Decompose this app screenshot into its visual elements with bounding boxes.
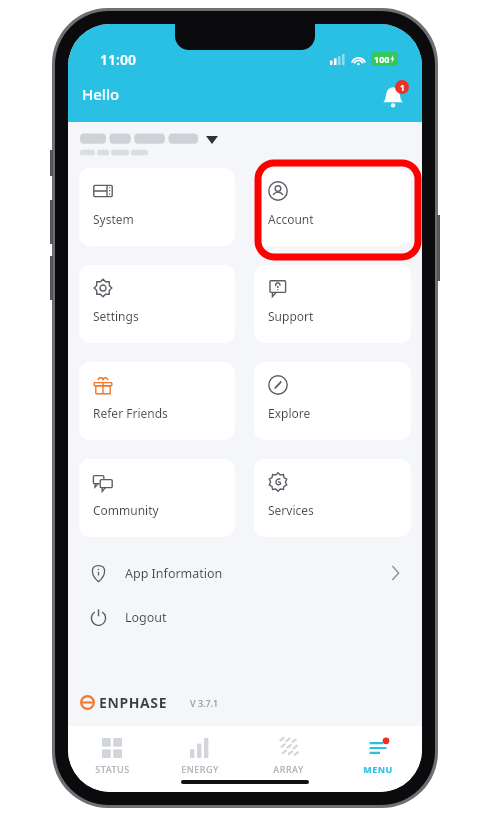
button[interactable]: System — [79, 168, 235, 246]
button[interactable] — [80, 132, 218, 156]
button[interactable]: ENERGY — [156, 736, 244, 777]
button[interactable]: Community — [79, 459, 235, 537]
staticText: 100 — [374, 53, 390, 65]
staticText: Support — [268, 308, 314, 324]
staticText: System — [93, 211, 134, 227]
button[interactable]: Notifications — [376, 78, 410, 112]
button[interactable]: Services — [254, 459, 411, 537]
staticText: 1 — [400, 82, 405, 93]
staticText: Account — [268, 211, 314, 227]
button[interactable]: Refer Friends — [79, 362, 235, 440]
staticText: Hello — [82, 84, 120, 104]
staticText: Settings — [93, 308, 139, 324]
button[interactable]: STATUS — [68, 736, 156, 777]
button[interactable]: Settings — [79, 265, 235, 343]
staticText: Logout — [125, 609, 167, 626]
button[interactable]: App Information — [68, 551, 422, 595]
staticText: Services — [268, 502, 314, 518]
staticText: Explore — [268, 405, 311, 421]
button[interactable]: Logout — [68, 595, 422, 639]
staticText: App Information — [125, 565, 223, 582]
staticText: V 3.7.1 — [190, 697, 219, 709]
staticText: MENU — [363, 763, 393, 775]
button[interactable]: Support — [254, 265, 411, 343]
button[interactable]: Explore — [254, 362, 411, 440]
staticText: STATUS — [95, 763, 130, 775]
staticText: ARRAY — [273, 763, 304, 775]
staticText: 11:00 — [100, 50, 136, 69]
staticText: Refer Friends — [93, 405, 168, 421]
staticText: Community — [93, 502, 159, 518]
button[interactable]: Account — [254, 168, 411, 246]
staticText: ENERGY — [181, 763, 219, 775]
button[interactable]: ARRAY — [244, 736, 333, 777]
button[interactable]: MENU — [333, 736, 422, 777]
staticText: ENPHASE — [99, 693, 168, 712]
